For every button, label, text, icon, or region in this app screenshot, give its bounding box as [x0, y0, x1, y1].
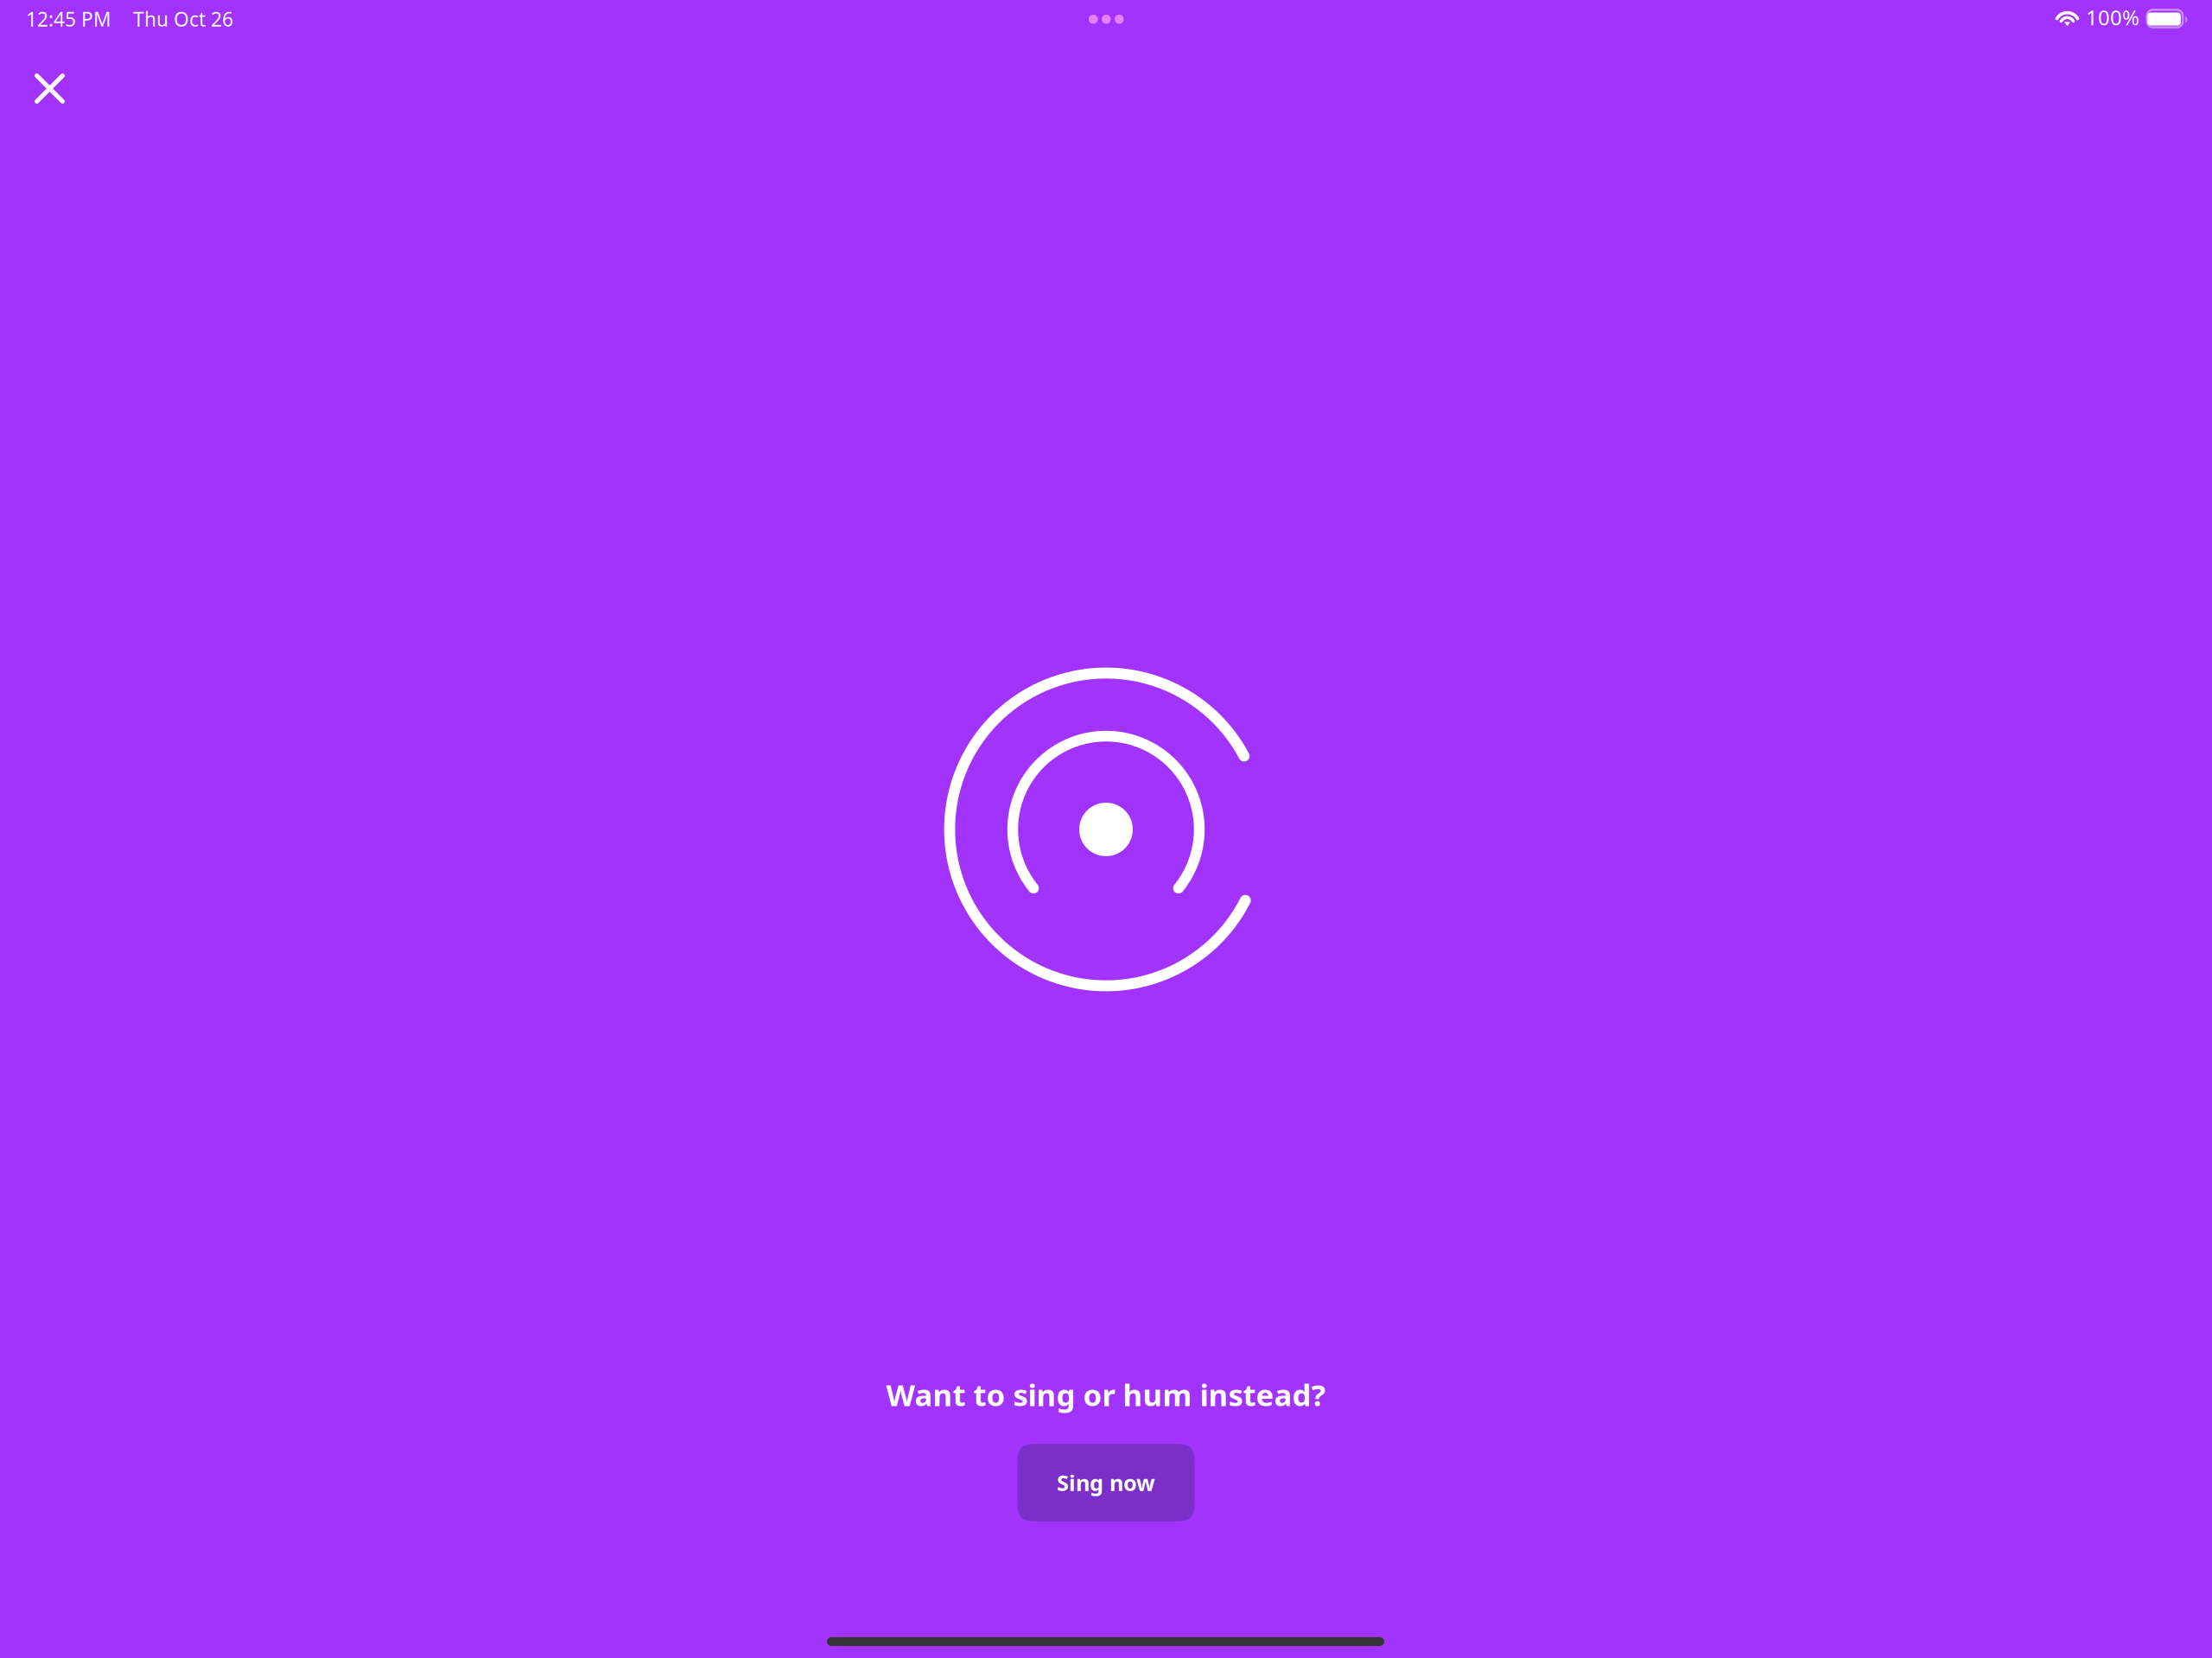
staticText: Sing now	[1057, 1468, 1155, 1497]
staticText: 100%	[2086, 3, 2139, 31]
staticText: Want to sing or hum instead?	[886, 1375, 1326, 1414]
button[interactable]: Sing now	[1017, 1444, 1195, 1521]
button[interactable]: Close	[16, 54, 84, 123]
staticText: 12:45 PM	[26, 6, 111, 32]
staticText: Thu Oct 26	[133, 6, 233, 32]
